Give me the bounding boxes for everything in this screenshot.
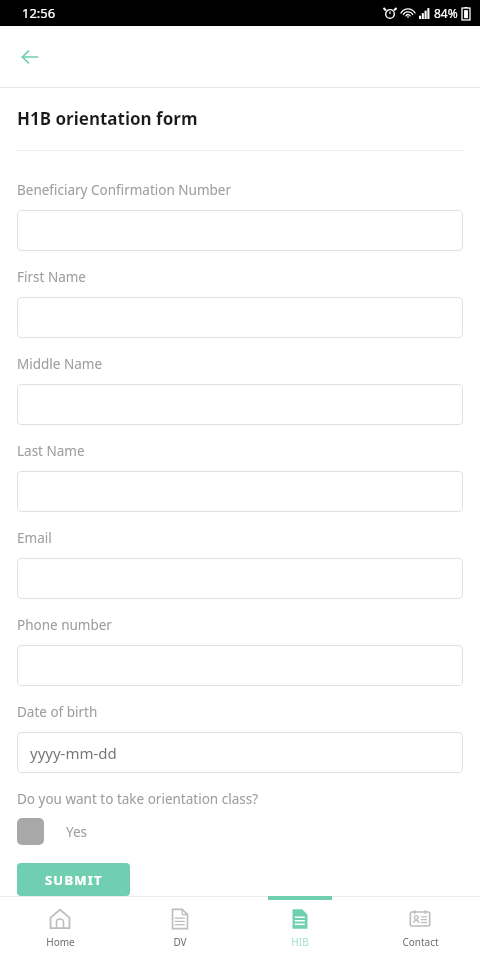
button[interactable] xyxy=(17,210,463,251)
button[interactable] xyxy=(17,384,463,425)
staticText: Beneficiary Confirmation Number xyxy=(17,181,232,199)
staticText: Phone number xyxy=(17,616,112,634)
staticText: Last Name xyxy=(17,442,85,460)
staticText: yyyy-mm-dd xyxy=(30,743,117,763)
staticText: SUBMIT xyxy=(45,871,103,889)
button[interactable] xyxy=(17,471,463,512)
staticText: H1B orientation form xyxy=(17,107,198,130)
button[interactable]: yyyy-mm-dd xyxy=(17,732,463,773)
button[interactable]: HIB xyxy=(240,896,360,960)
button[interactable]: DV xyxy=(120,896,240,960)
staticText: Home xyxy=(46,935,75,949)
staticText: 12:56 xyxy=(22,4,56,22)
staticText: HIB xyxy=(291,935,309,949)
staticText: Middle Name xyxy=(17,355,103,373)
staticText: Yes xyxy=(66,823,88,841)
button[interactable]: Back xyxy=(13,40,47,74)
button[interactable]: Yes xyxy=(17,818,88,845)
button[interactable]: SUBMIT xyxy=(17,863,130,896)
staticText: Date of birth xyxy=(17,703,98,721)
staticText: 84% xyxy=(434,5,458,21)
button[interactable]: Home xyxy=(0,896,120,960)
staticText: DV xyxy=(173,935,187,949)
button[interactable]: Contact xyxy=(360,896,480,960)
staticText: First Name xyxy=(17,268,86,286)
button[interactable] xyxy=(17,558,463,599)
staticText: Email xyxy=(17,529,52,547)
button[interactable] xyxy=(17,645,463,686)
staticText: Do you want to take orientation class? xyxy=(17,790,259,808)
staticText: Contact xyxy=(402,935,439,949)
button[interactable] xyxy=(17,297,463,338)
